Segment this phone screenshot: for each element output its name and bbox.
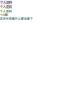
staticText: 个人资料 — [0, 0, 12, 5]
staticText: 个人资料 — [0, 9, 12, 13]
staticText: 个人资料 — [0, 13, 8, 16]
staticText: 这家伙很懒什么都没留下 — [0, 16, 33, 20]
staticText: 个人资料 — [0, 5, 12, 9]
